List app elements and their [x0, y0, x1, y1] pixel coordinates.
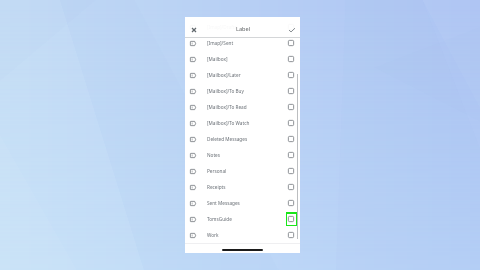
staticText: Work — [207, 232, 219, 238]
button[interactable]: Personal — [185, 163, 300, 179]
staticText: Notes — [207, 152, 220, 158]
button[interactable]: Receipts — [185, 179, 300, 195]
staticText: [Imap]/Drafts — [207, 24, 237, 30]
button[interactable]: Sent Messages — [185, 195, 300, 211]
button[interactable]: [Mailbox]/To Read — [185, 99, 300, 115]
staticText: [Mailbox]/Later — [207, 72, 241, 78]
button[interactable]: Close — [186, 22, 201, 37]
staticText: Deleted Messages — [207, 136, 248, 142]
staticText: TomsGuide — [207, 216, 232, 222]
button[interactable]: Deleted Messages — [185, 131, 300, 147]
button[interactable]: [Mailbox] — [185, 51, 300, 67]
button[interactable]: [Mailbox]/To Watch — [185, 115, 300, 131]
staticText: [Mailbox]/To Buy — [207, 88, 244, 94]
button[interactable]: TomsGuide — [185, 211, 300, 227]
button[interactable]: Work — [185, 227, 300, 243]
staticText: Label — [236, 25, 251, 33]
button[interactable]: [Imap]/Sent — [185, 35, 300, 51]
button[interactable]: Notes — [185, 147, 300, 163]
staticText: Receipts — [207, 184, 226, 190]
staticText: [Imap]/Sent — [207, 40, 234, 46]
button[interactable]: [Imap]/Drafts — [185, 19, 300, 35]
staticText: [Mailbox]/To Watch — [207, 120, 250, 126]
staticText: Sent Messages — [207, 200, 240, 206]
button[interactable]: [Mailbox]/To Buy — [185, 83, 300, 99]
button[interactable]: [Mailbox]/Later — [185, 67, 300, 83]
staticText: [Mailbox]/To Read — [207, 104, 247, 110]
button[interactable]: Done — [284, 22, 299, 37]
staticText: Personal — [207, 168, 227, 174]
staticText: [Mailbox] — [207, 56, 228, 62]
